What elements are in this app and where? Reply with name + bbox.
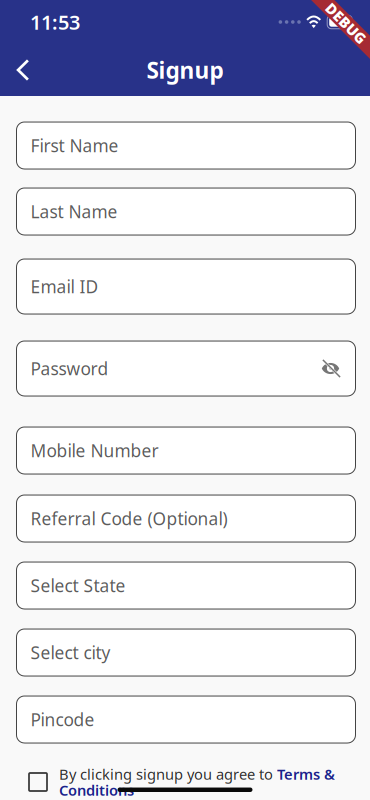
staticText: Pincode <box>30 708 94 731</box>
button[interactable]: First Name <box>16 122 355 169</box>
staticText: By clicking signup you agree to <box>59 764 277 784</box>
button[interactable]: Last Name <box>16 188 355 235</box>
staticText: DEBUG <box>320 14 370 33</box>
staticText: Conditions <box>59 780 134 800</box>
button[interactable]: Select State <box>16 562 355 609</box>
button[interactable]: Terms & <box>277 764 335 784</box>
button[interactable]: Back <box>0 45 46 95</box>
button[interactable]: Agree to terms and conditions <box>29 773 47 791</box>
staticText: Mobile Number <box>30 439 158 462</box>
staticText: Email ID <box>30 275 98 298</box>
staticText: Signup <box>146 55 223 85</box>
staticText: Password <box>30 357 108 380</box>
button[interactable]: Select city <box>16 629 355 676</box>
staticText: Referral Code (Optional) <box>30 507 227 530</box>
staticText: 11:53 <box>30 9 80 35</box>
button[interactable]: Conditions <box>59 782 134 798</box>
staticText: Select city <box>30 641 110 664</box>
button[interactable]: Password <box>16 341 355 396</box>
staticText: First Name <box>30 134 118 157</box>
button[interactable]: Pincode <box>16 696 355 743</box>
button[interactable]: Email ID <box>16 259 355 314</box>
staticText: Terms & <box>277 764 335 784</box>
staticText: Select State <box>30 574 125 597</box>
staticText: Last Name <box>30 200 117 223</box>
button[interactable]: Mobile Number <box>16 427 355 474</box>
button[interactable]: Referral Code (Optional) <box>16 495 355 542</box>
